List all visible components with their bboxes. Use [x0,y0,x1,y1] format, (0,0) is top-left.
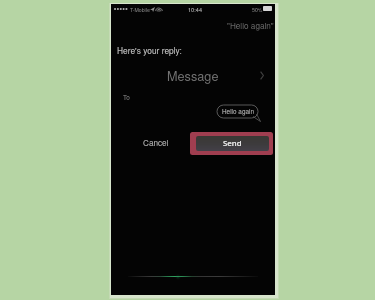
staticText: T-Mobile [130,6,150,13]
staticText: Send [223,138,242,149]
staticText: To [123,93,130,102]
staticText: Hello again [222,107,254,116]
staticText: Here's your reply: [117,44,182,56]
button[interactable]: Message [111,60,275,90]
button[interactable]: Hello again [217,105,258,118]
staticText: Cancel [143,137,169,149]
staticText: 10:44 [188,6,202,14]
staticText: "Hello again" [227,20,274,32]
staticText: Message [167,66,219,84]
button[interactable]: Send [196,136,269,151]
staticText: 50% [252,6,263,13]
button[interactable]: Cancel [136,133,176,153]
